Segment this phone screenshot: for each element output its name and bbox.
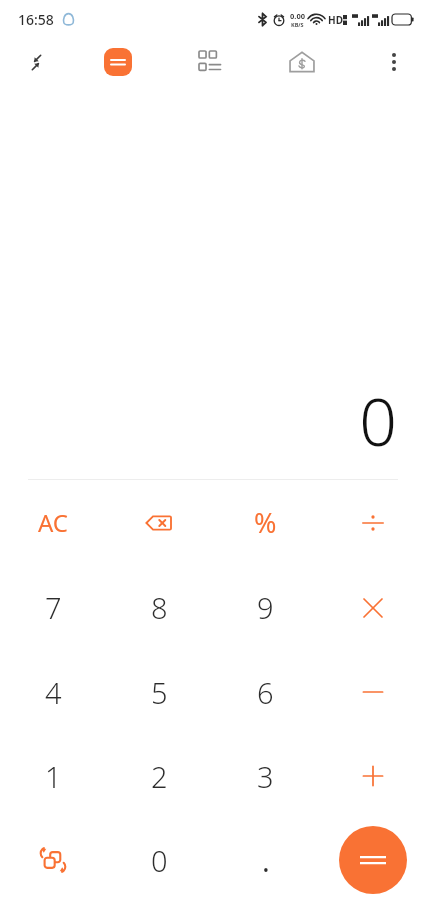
staticText: 0.00 xyxy=(290,11,305,21)
staticText: 2 xyxy=(151,757,168,796)
button[interactable]: 5 xyxy=(106,650,212,734)
button[interactable]: Multiply xyxy=(319,565,426,650)
button[interactable]: Mortgage calculator xyxy=(280,40,324,84)
button[interactable]: Backspace xyxy=(106,480,212,565)
button[interactable]: Divide xyxy=(319,480,426,565)
other: Unit converter xyxy=(36,843,70,877)
staticText: HD xyxy=(328,13,343,27)
staticText: 7 xyxy=(45,588,62,627)
button[interactable]: 0 xyxy=(106,818,212,902)
staticText: 16:58 xyxy=(18,10,54,29)
button[interactable]: Plus xyxy=(319,734,426,818)
button[interactable]: 1 xyxy=(0,734,106,818)
staticText: 8 xyxy=(151,588,168,627)
staticText: 5 xyxy=(151,673,168,712)
staticText: KB/S xyxy=(291,21,304,28)
button[interactable]: 3 xyxy=(212,734,319,818)
button[interactable]: Calculator mode xyxy=(96,40,140,84)
staticText: 9 xyxy=(257,588,274,627)
button[interactable]: 2 xyxy=(106,734,212,818)
staticText: 4 xyxy=(45,673,62,712)
staticText: AC xyxy=(38,506,69,539)
button[interactable]: 4 xyxy=(0,650,106,734)
button[interactable]: . xyxy=(212,818,319,902)
staticText: . xyxy=(262,841,270,880)
button[interactable]: 7 xyxy=(0,565,106,650)
staticText: 3 xyxy=(257,757,274,796)
staticText: 6 xyxy=(257,673,274,712)
button[interactable]: Unit converter xyxy=(0,818,106,902)
staticText: 0 xyxy=(151,841,168,880)
staticText: 1 xyxy=(45,757,62,796)
button[interactable]: More tools xyxy=(188,40,232,84)
button[interactable]: 9 xyxy=(212,565,319,650)
button[interactable]: AC xyxy=(0,480,106,565)
button[interactable]: Collapse xyxy=(14,40,58,84)
button[interactable]: More options xyxy=(372,40,416,84)
button[interactable]: 6 xyxy=(212,650,319,734)
staticText: % xyxy=(254,504,277,541)
staticText: 0 xyxy=(359,375,397,465)
button[interactable]: % xyxy=(212,480,319,565)
button[interactable]: Equals xyxy=(339,826,407,894)
button[interactable]: Minus xyxy=(319,650,426,734)
button[interactable]: 8 xyxy=(106,565,212,650)
